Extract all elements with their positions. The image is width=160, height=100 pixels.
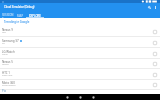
staticText: SESSIONS bbox=[2, 13, 15, 18]
button[interactable]: Bookmark bbox=[152, 40, 157, 45]
button[interactable]: Bookmark bbox=[152, 61, 157, 66]
staticText: LG Watch bbox=[2, 50, 15, 54]
button[interactable]: Bookmark bbox=[152, 82, 157, 87]
staticText: EXPLORE bbox=[29, 14, 41, 18]
staticText: Dual core bbox=[2, 74, 13, 77]
button[interactable]: EXPLORE bbox=[26, 13, 44, 18]
staticText: Tablet bbox=[2, 63, 9, 66]
staticText: HTC 1 bbox=[2, 71, 10, 75]
button[interactable]: Nexus 9 bbox=[0, 26, 160, 37]
button[interactable]: SESSIONS bbox=[2, 13, 15, 18]
button[interactable]: Bookmark bbox=[152, 51, 157, 56]
button[interactable]: Bookmark bbox=[152, 29, 157, 34]
button[interactable]: Recent apps bbox=[90, 94, 96, 100]
staticText: Trending in Google bbox=[4, 20, 30, 24]
staticText: Moto 360 bbox=[2, 81, 15, 85]
button[interactable]: Search bbox=[146, 4, 152, 10]
button[interactable]: Moto 360 bbox=[0, 79, 160, 90]
staticText: MAP bbox=[17, 14, 24, 18]
button[interactable]: More options bbox=[152, 4, 158, 10]
button[interactable]: Home bbox=[77, 94, 83, 100]
staticText: Samsung S7 bbox=[2, 39, 19, 43]
staticText: Ph bbox=[2, 42, 5, 45]
staticText: Wear bbox=[2, 53, 8, 56]
staticText: Nexus 9 bbox=[2, 28, 13, 32]
staticText: Tab bbox=[2, 31, 6, 34]
button[interactable]: Samsung S7 bbox=[0, 37, 160, 48]
staticText: Pix bbox=[2, 89, 6, 93]
button[interactable]: MAP bbox=[15, 13, 26, 18]
staticText: Cloud Simulator (Debug) bbox=[4, 5, 35, 9]
button[interactable]: LG Watch bbox=[0, 48, 160, 59]
button[interactable]: Bookmark bbox=[152, 72, 157, 77]
button[interactable]: Back bbox=[64, 94, 70, 100]
staticText: Nexus 5 bbox=[2, 60, 13, 64]
button[interactable]: HTC 1 bbox=[0, 69, 160, 80]
staticText: Smart watch bbox=[2, 84, 16, 87]
button[interactable]: Nexus 5 bbox=[0, 58, 160, 69]
